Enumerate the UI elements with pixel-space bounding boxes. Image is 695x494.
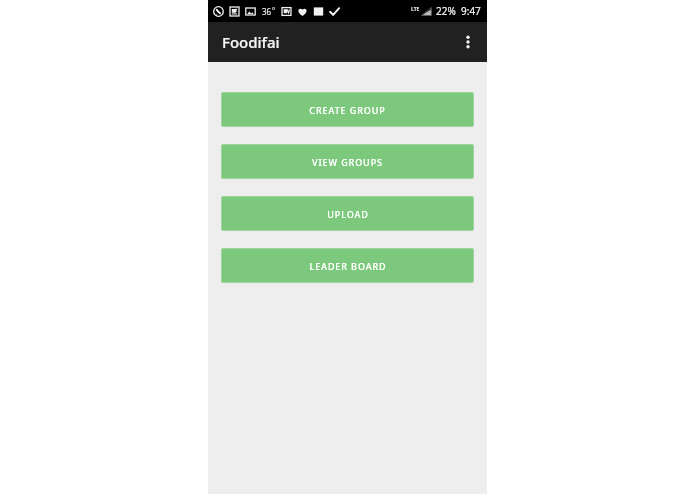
button[interactable]: CREATE GROUP xyxy=(222,93,473,126)
staticText: UPLOAD xyxy=(327,208,369,220)
staticText: 36 xyxy=(262,6,272,17)
staticText: ° xyxy=(272,6,275,16)
button[interactable]: LEADER BOARD xyxy=(222,249,473,282)
staticText: 22% xyxy=(436,4,456,18)
button[interactable]: VIEW GROUPS xyxy=(222,145,473,178)
button[interactable]: UPLOAD xyxy=(222,197,473,230)
staticText: VIEW GROUPS xyxy=(312,156,383,168)
staticText: LTE xyxy=(411,6,420,13)
button[interactable]: More options xyxy=(453,27,483,57)
staticText: Foodifai xyxy=(222,32,280,52)
staticText: LEADER BOARD xyxy=(309,260,387,272)
staticText: 9:47 xyxy=(461,4,481,18)
staticText: CREATE GROUP xyxy=(309,104,386,116)
